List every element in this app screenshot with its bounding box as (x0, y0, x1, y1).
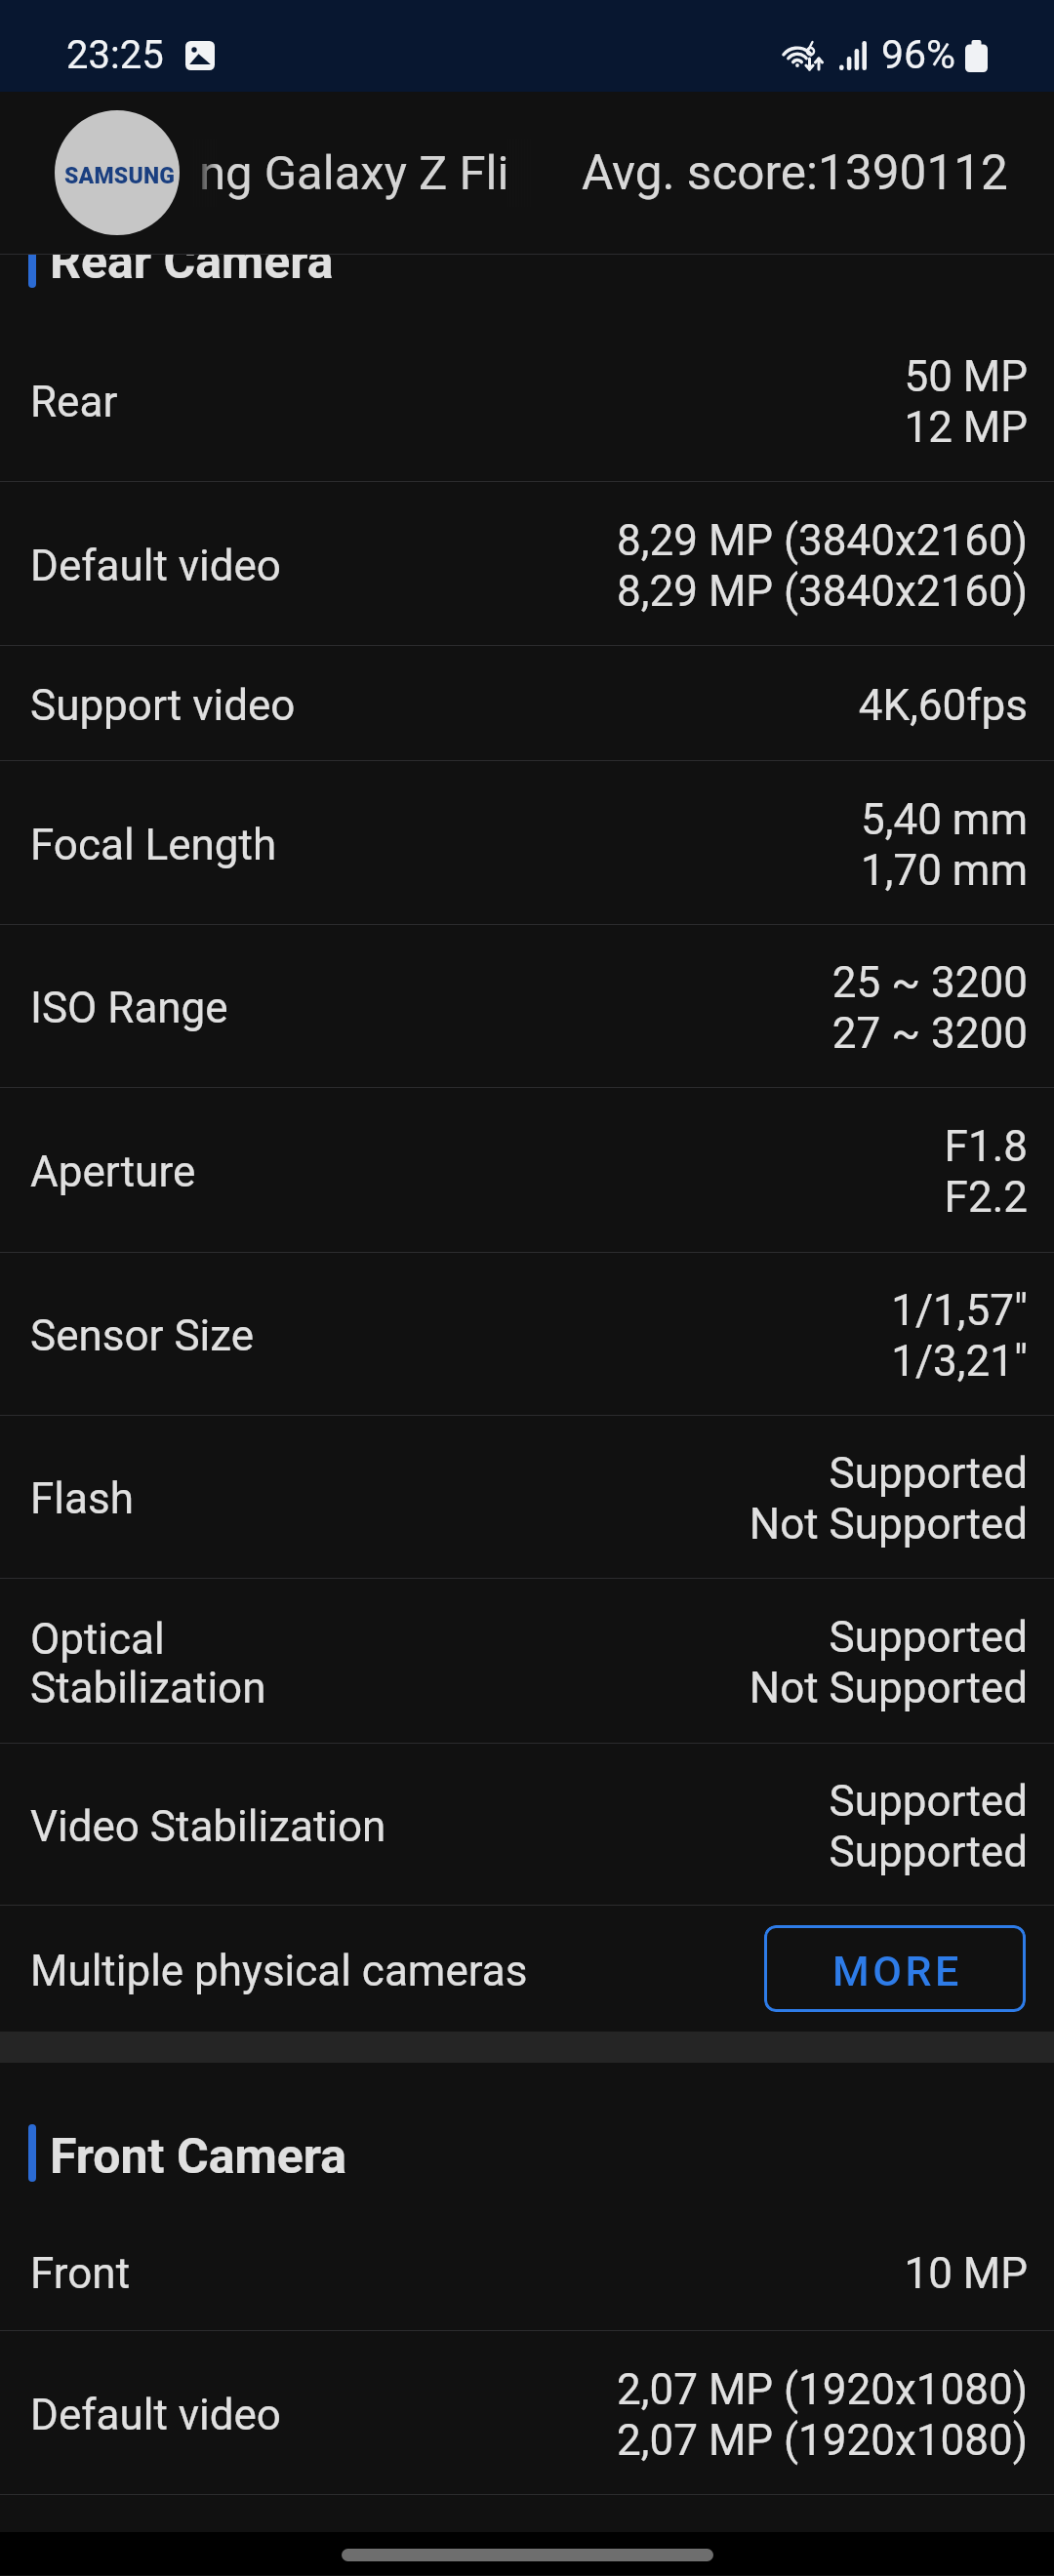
staticText: 8,29 MP (3840x2160) (617, 566, 1028, 617)
staticText: 5,40 mm (861, 794, 1028, 845)
staticText: Aperture (30, 1147, 196, 1197)
staticText: 96% (881, 31, 956, 78)
staticText: 12 MP (904, 402, 1028, 453)
staticText: 25 ~ 3200 (831, 957, 1028, 1008)
staticText: Avg. score:1390112 (582, 144, 1008, 201)
button[interactable]: Rear (0, 318, 1054, 481)
staticText: F1.8 (944, 1121, 1028, 1172)
button[interactable]: Multiple physical cameras (0, 1906, 1054, 2032)
staticText: Supported (829, 1776, 1028, 1827)
staticText: 1/1,57" (891, 1285, 1028, 1336)
staticText: Default video (30, 2390, 281, 2440)
staticText: Default video (30, 541, 281, 591)
button[interactable]: Default video (0, 2331, 1054, 2494)
staticText: Support video (30, 680, 296, 731)
staticText: 1/3,21" (891, 1336, 1028, 1387)
staticText: Sensor Size (30, 1310, 255, 1361)
staticText: 4K,60fps (858, 680, 1028, 731)
button[interactable]: Sensor Size (0, 1253, 1054, 1415)
staticText: Front Camera (50, 2128, 347, 2186)
staticText: 50 MP (904, 351, 1028, 402)
staticText: Optical Stabilization (30, 1614, 266, 1712)
button[interactable]: ng Galaxy Z Fli (193, 139, 531, 207)
button[interactable]: Aperture (0, 1088, 1054, 1252)
button[interactable]: Video Stabilization (0, 1744, 1054, 1905)
button[interactable]: Focal Length (0, 761, 1054, 924)
staticText: 2,07 MP (1920x1080) (617, 2364, 1028, 2415)
staticText: Not Supported (749, 1499, 1028, 1550)
button[interactable]: Device logo (55, 110, 180, 235)
staticText: Supported (829, 1612, 1028, 1663)
staticText: Supported (829, 1827, 1028, 1877)
staticText: 8,29 MP (3840x2160) (617, 515, 1028, 566)
staticText: Video Stabilization (30, 1801, 386, 1852)
button[interactable]: Flash (0, 1416, 1054, 1578)
staticText: ISO Range (30, 983, 228, 1033)
staticText: 10 MP (904, 2248, 1028, 2299)
staticText: Multiple physical cameras (30, 1946, 528, 1996)
button[interactable]: Support video (0, 646, 1054, 760)
button[interactable]: Front (0, 2213, 1054, 2330)
staticText: Rear Camera (50, 255, 334, 291)
staticText: Flash (30, 1473, 134, 1524)
staticText: SAMSUNG (64, 163, 176, 189)
staticText: Not Supported (749, 1663, 1028, 1713)
staticText: MORE (832, 1947, 962, 1995)
button[interactable]: Default video (0, 482, 1054, 645)
staticText: 23:25 (66, 32, 164, 78)
staticText: Front (30, 2248, 131, 2299)
staticText: Focal Length (30, 820, 277, 870)
staticText: Supported (829, 1448, 1028, 1499)
button[interactable]: MORE (764, 1925, 1026, 2012)
staticText: 1,70 mm (861, 845, 1028, 896)
button[interactable]: Home (342, 2549, 713, 2561)
button[interactable]: Optical Stabilization (0, 1579, 1054, 1743)
staticText: 27 ~ 3200 (831, 1008, 1028, 1059)
staticText: ng Galaxy Z Fli (199, 145, 509, 201)
staticText: Rear (30, 377, 118, 427)
staticText: F2.2 (944, 1172, 1028, 1223)
button[interactable]: ISO Range (0, 925, 1054, 1087)
staticText: 2,07 MP (1920x1080) (617, 2415, 1028, 2466)
